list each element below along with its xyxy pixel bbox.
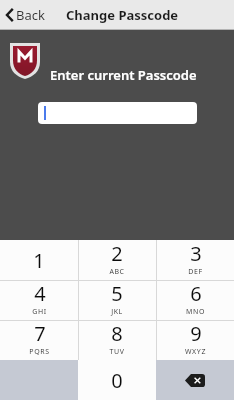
button[interactable]: 9	[156, 320, 234, 360]
staticText: 0	[111, 367, 123, 394]
button[interactable]: Back	[6, 6, 45, 24]
staticText: 7	[34, 320, 46, 347]
staticText: GHI	[32, 307, 47, 317]
staticText: 6	[190, 280, 202, 307]
staticText: MNO	[186, 307, 205, 317]
button[interactable]: 4	[0, 280, 78, 320]
button[interactable]: 2	[78, 240, 156, 280]
staticText: 5	[111, 280, 123, 307]
staticText: ABC	[109, 267, 125, 277]
staticText: 2	[111, 240, 123, 267]
staticText: 8	[111, 320, 123, 347]
staticText: 1	[33, 247, 45, 274]
staticText: JKL	[111, 307, 123, 317]
button[interactable]: 0	[78, 360, 156, 400]
staticText: 3	[190, 240, 202, 267]
staticText: DEF	[188, 267, 203, 277]
staticText: Enter current Passcode	[50, 66, 197, 84]
staticText: 4	[34, 280, 46, 307]
staticText: PQRS	[29, 347, 50, 357]
staticText: Change Passcode	[66, 6, 179, 24]
button[interactable]: 5	[78, 280, 156, 320]
button[interactable]: Backspace	[156, 360, 234, 400]
button[interactable]: 1	[0, 240, 78, 280]
staticText: 9	[190, 320, 202, 347]
button[interactable]: 3	[156, 240, 234, 280]
button[interactable]	[38, 102, 197, 124]
staticText: WXYZ	[185, 347, 206, 357]
staticText: TUV	[109, 347, 125, 357]
button[interactable]: 7	[0, 320, 78, 360]
staticText: Back	[16, 6, 45, 24]
button[interactable]: 6	[156, 280, 234, 320]
button[interactable]: 8	[78, 320, 156, 360]
